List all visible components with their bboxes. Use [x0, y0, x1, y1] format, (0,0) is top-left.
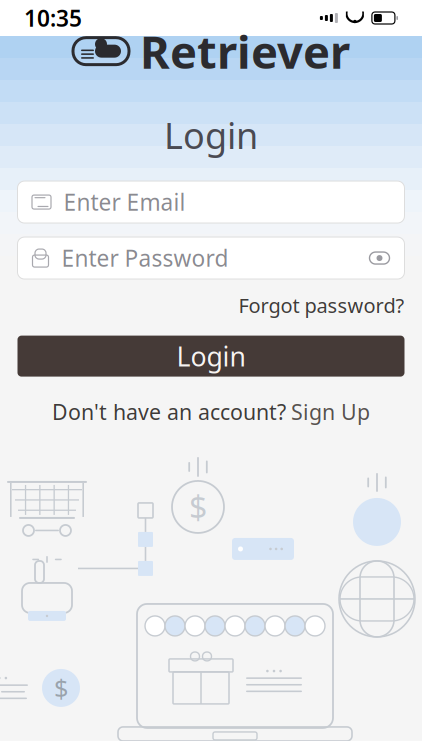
staticText: Enter Email: [63, 187, 185, 217]
staticText: $: [189, 486, 207, 528]
button[interactable]: Forgot password?: [238, 289, 404, 322]
staticText: Login: [164, 111, 258, 159]
staticText: Login: [176, 338, 245, 374]
staticText: Forgot password?: [238, 292, 404, 319]
staticText: Don't have an account?: [52, 398, 286, 426]
staticText: Retriever: [140, 21, 350, 81]
button[interactable]: Enter Password: [17, 237, 404, 279]
staticText: $: [54, 671, 68, 705]
button[interactable]: Don't have an account?: [52, 395, 370, 429]
staticText: Sign Up: [291, 398, 370, 426]
staticText: Enter Password: [61, 243, 228, 273]
staticText: 10:35: [24, 3, 82, 33]
button[interactable]: Login: [17, 336, 404, 377]
